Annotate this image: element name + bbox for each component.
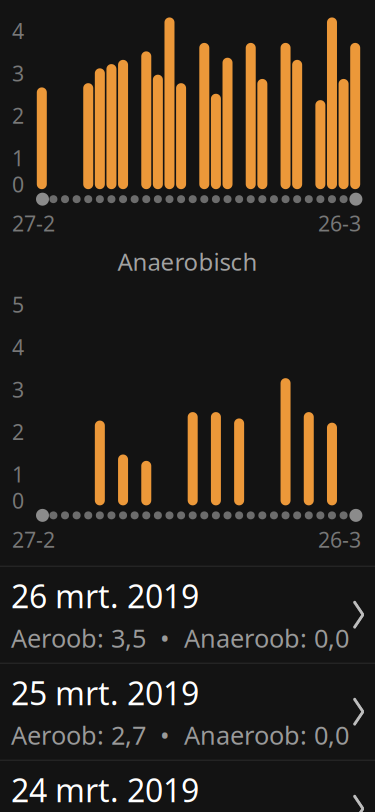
button[interactable]: 25 mrt. 2019 <box>0 664 375 760</box>
staticText: 25 mrt. 2019 <box>11 672 199 714</box>
staticText: 5 <box>12 290 24 319</box>
staticText: 27-2 <box>12 525 55 554</box>
button[interactable]: 26 mrt. 2019 <box>0 567 375 663</box>
staticText: 4 <box>12 333 24 361</box>
staticText: 2 <box>12 101 24 130</box>
staticText: 26 mrt. 2019 <box>11 575 199 617</box>
staticText: 27-2 <box>12 209 55 237</box>
staticText: 3 <box>12 59 24 87</box>
staticText: 4 <box>12 17 24 45</box>
staticText: 26-3 <box>318 525 361 554</box>
staticText: 1 <box>12 460 24 488</box>
staticText: 2 <box>12 418 24 446</box>
staticText: Aeroob: 3,5 • Anaeroob: 0,0 <box>11 621 349 655</box>
staticText: 26-3 <box>318 209 361 237</box>
staticText: 0 <box>12 170 24 198</box>
staticText: 3 <box>12 375 24 403</box>
staticText: 24 mrt. 2019 <box>11 769 199 811</box>
staticText: Anaerobisch <box>117 245 257 277</box>
staticText: 0 <box>12 486 24 514</box>
staticText: 1 <box>12 144 24 172</box>
staticText: Aeroob: 2,7 • Anaeroob: 0,0 <box>11 718 349 752</box>
button[interactable]: 24 mrt. 2019 <box>0 761 375 812</box>
